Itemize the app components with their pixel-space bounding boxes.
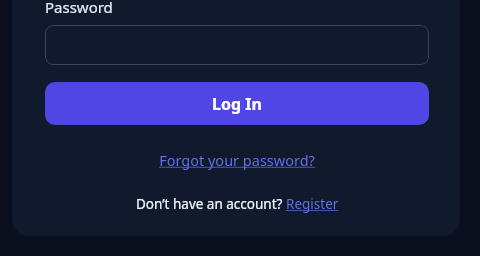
button[interactable]: Log In bbox=[45, 82, 429, 125]
staticText: Don’t have an account? bbox=[136, 195, 286, 213]
button[interactable]: Register bbox=[286, 195, 339, 213]
button[interactable]: Forgot your password? bbox=[45, 150, 429, 170]
button[interactable]: Password input field bbox=[45, 25, 429, 65]
staticText: Password bbox=[45, 0, 113, 17]
staticText: Forgot your password? bbox=[159, 150, 315, 170]
staticText: Log In bbox=[212, 93, 262, 115]
staticText: Register bbox=[286, 195, 339, 213]
